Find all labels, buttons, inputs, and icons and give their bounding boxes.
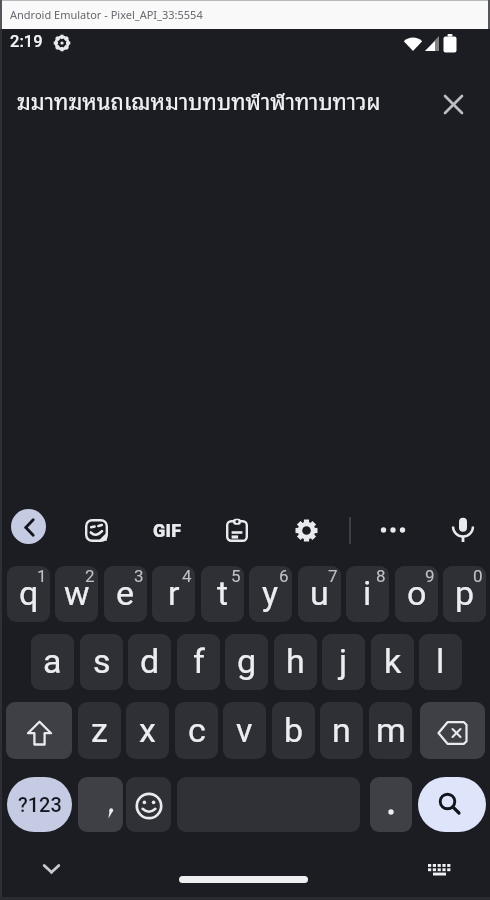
button[interactable] xyxy=(6,702,72,759)
button[interactable] xyxy=(11,509,46,544)
button[interactable] xyxy=(420,702,485,759)
staticText: m xyxy=(376,710,406,750)
staticText: a xyxy=(43,641,62,681)
staticText: d xyxy=(140,641,160,681)
staticText: GIF xyxy=(153,520,182,541)
button[interactable]: j xyxy=(322,634,365,690)
staticText: Android Emulator - Pixel_API_33:5554 xyxy=(10,7,203,22)
button[interactable]: q xyxy=(7,566,50,622)
button[interactable] xyxy=(370,777,412,832)
staticText: 9 xyxy=(425,566,435,586)
button[interactable] xyxy=(223,516,251,544)
staticText: h xyxy=(286,641,305,681)
staticText: 3 xyxy=(134,566,144,586)
button[interactable]: c xyxy=(175,702,218,759)
staticText: j xyxy=(339,641,348,681)
button[interactable]: e xyxy=(104,566,147,622)
staticText: p xyxy=(455,573,475,613)
button[interactable] xyxy=(126,777,171,832)
button[interactable]: r xyxy=(152,566,195,622)
button[interactable]: b xyxy=(272,702,315,759)
staticText: 8 xyxy=(376,566,386,586)
button[interactable]: m xyxy=(369,702,412,759)
button[interactable]: i xyxy=(346,566,389,622)
button[interactable]: k xyxy=(371,634,414,690)
staticText: g xyxy=(237,641,257,681)
button[interactable]: z xyxy=(78,702,121,759)
button[interactable] xyxy=(449,514,477,546)
staticText: 2 xyxy=(85,566,95,586)
button[interactable]: v xyxy=(223,702,266,759)
staticText: 2:19 xyxy=(10,32,43,51)
staticText: z xyxy=(91,710,108,750)
staticText: l xyxy=(436,641,445,681)
staticText: ฆมาทฆหนถเฌหมาบทบทฬาฬาทาบทาวผ xyxy=(17,82,381,117)
button[interactable] xyxy=(82,516,110,544)
staticText: 1 xyxy=(37,566,47,586)
button[interactable]: a xyxy=(31,634,74,690)
staticText: 7 xyxy=(328,566,338,586)
button[interactable]: n xyxy=(320,702,363,759)
staticText: u xyxy=(310,573,329,613)
staticText: n xyxy=(332,710,351,750)
button[interactable]: o xyxy=(395,566,438,622)
button[interactable]: h xyxy=(274,634,317,690)
button[interactable] xyxy=(78,777,123,832)
staticText: 5 xyxy=(231,566,241,586)
staticText: i xyxy=(363,573,372,613)
button[interactable]: x xyxy=(126,702,169,759)
staticText: c xyxy=(188,710,206,750)
button[interactable]: p xyxy=(443,566,486,622)
staticText: y xyxy=(262,573,279,613)
button[interactable]: w xyxy=(55,566,98,622)
staticText: x xyxy=(139,710,156,750)
button[interactable]: s xyxy=(80,634,123,690)
staticText: w xyxy=(64,573,90,613)
button[interactable] xyxy=(420,856,458,884)
staticText: t xyxy=(217,573,229,613)
staticText: e xyxy=(116,573,135,613)
staticText: r xyxy=(168,573,180,613)
staticText: v xyxy=(236,710,253,750)
staticText: q xyxy=(19,573,39,613)
staticText: o xyxy=(407,573,427,613)
staticText: 4 xyxy=(182,566,192,586)
button[interactable]: t xyxy=(201,566,244,622)
button[interactable]: u xyxy=(298,566,341,622)
button[interactable] xyxy=(374,516,412,544)
staticText: 0 xyxy=(473,566,483,586)
staticText: ?123 xyxy=(18,793,62,816)
button[interactable]: f xyxy=(177,634,220,690)
button[interactable]: l xyxy=(419,634,462,690)
staticText: s xyxy=(93,641,111,681)
button[interactable] xyxy=(33,854,69,884)
button[interactable]: y xyxy=(249,566,292,622)
staticText: k xyxy=(384,641,402,681)
button[interactable] xyxy=(438,89,468,119)
staticText: 6 xyxy=(279,566,289,586)
button[interactable]: d xyxy=(128,634,171,690)
button[interactable] xyxy=(418,777,486,832)
staticText: f xyxy=(193,641,205,681)
button[interactable]: GIF xyxy=(147,516,187,544)
button[interactable]: g xyxy=(225,634,268,690)
button[interactable] xyxy=(292,516,320,544)
button[interactable]: ?123 xyxy=(7,777,72,832)
staticText: b xyxy=(284,710,304,750)
